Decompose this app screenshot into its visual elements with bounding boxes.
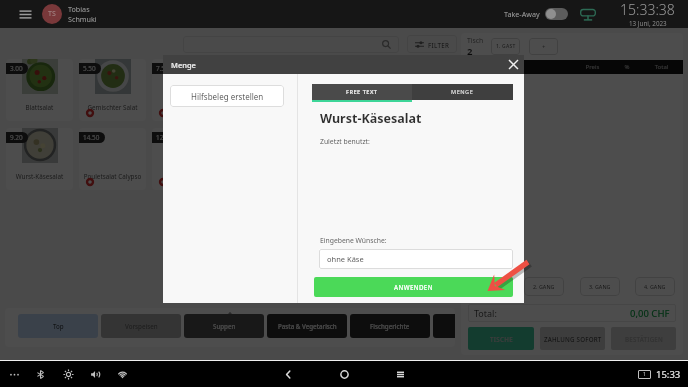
button[interactable]: ANWENDEN — [314, 277, 513, 297]
button[interactable]: 12.00 — [152, 128, 219, 190]
staticText: 2 — [467, 45, 473, 58]
button[interactable]: Brightness — [60, 366, 76, 382]
button[interactable]: Suppen — [184, 314, 264, 338]
button[interactable]: 9.20 — [6, 128, 73, 190]
staticText: 5.50 — [83, 64, 96, 73]
button[interactable]: 2. GANG — [524, 277, 564, 296]
staticText: Thonsalat — [152, 172, 219, 181]
button[interactable] — [433, 314, 455, 338]
button[interactable]: Wi-Fi — [114, 366, 130, 382]
staticText: Top — [53, 322, 64, 330]
staticText: 3.00 — [10, 64, 23, 73]
staticText: Hilfsbeleg erstellen — [191, 91, 264, 102]
button[interactable]: Close — [502, 55, 524, 74]
button[interactable]: Home — [336, 366, 352, 382]
staticText: Total: — [474, 307, 497, 319]
staticText: 13 Juni, 2023 — [629, 19, 667, 28]
staticText: Pouletsalat Calypso — [79, 172, 146, 181]
staticText: Pasta & Vegetarisch — [278, 322, 337, 330]
staticText: ohne Käse — [327, 254, 364, 264]
staticText: 2. GANG — [533, 283, 555, 290]
button[interactable]: Top — [18, 314, 98, 338]
staticText: Schmuki — [68, 14, 97, 24]
staticText: 4. GANG — [644, 283, 666, 290]
staticText: MENGE — [451, 88, 474, 96]
staticText: 15:33 — [656, 368, 681, 381]
staticText: 7.50 — [156, 64, 169, 73]
button[interactable]: Pasta & Vegetarisch — [267, 314, 347, 338]
staticText: FREE TEXT — [346, 88, 378, 96]
staticText: Take-Away — [504, 9, 540, 19]
staticText: BESTÄTIGEN — [625, 335, 663, 343]
button[interactable]: Fischgerichte — [350, 314, 430, 338]
button[interactable]: Vorspeisen — [101, 314, 181, 338]
button[interactable]: Bluetooth — [32, 366, 48, 382]
button[interactable]: ZAHLUNG SOFORT — [540, 327, 605, 350]
button[interactable]: Add guest — [529, 38, 558, 55]
button[interactable]: Display — [578, 4, 598, 24]
button[interactable]: 3. GANG — [580, 277, 620, 296]
staticText: Zuletzt benutzt: — [320, 137, 370, 146]
staticText: 1 — [643, 371, 646, 378]
button[interactable]: MENGE — [412, 84, 513, 100]
staticText: Gemischter Salat — [79, 103, 146, 112]
button[interactable]: Menu — [16, 5, 34, 23]
button[interactable]: 5.50 — [79, 59, 146, 121]
staticText: Menge — [171, 60, 196, 70]
button[interactable]: Volume — [87, 366, 103, 382]
button[interactable]: Back — [280, 366, 296, 382]
staticText: Tobias — [68, 4, 90, 14]
staticText: Fischgerichte — [370, 322, 410, 330]
staticText: 0,00 CHF — [630, 307, 670, 320]
staticText: Suppen — [213, 322, 236, 330]
staticText: 14.50 — [83, 133, 100, 142]
button[interactable]: TISCHE — [468, 327, 534, 350]
button[interactable]: Take-Away toggle — [545, 8, 568, 20]
button[interactable]: FREE TEXT — [312, 84, 412, 100]
staticText: TS — [48, 9, 56, 19]
button[interactable]: 1. GANG — [469, 277, 509, 296]
staticText: 12.00 — [156, 133, 173, 142]
staticText: Tisch — [467, 36, 484, 45]
staticText: Preis — [571, 63, 614, 71]
staticText: ANWENDEN — [394, 283, 433, 291]
button[interactable]: 7.50 — [152, 59, 219, 121]
button[interactable]: Search — [183, 36, 399, 53]
staticText: 9.20 — [10, 133, 23, 142]
button[interactable]: FILTER — [407, 35, 457, 53]
staticText: 15:33:38 — [620, 0, 675, 19]
staticText: Vorspeisen — [125, 322, 158, 330]
button[interactable]: 3.00 — [6, 59, 73, 121]
button[interactable]: Tisch — [467, 36, 484, 58]
button[interactable]: 1. GAST — [491, 38, 520, 55]
staticText: 1. GAST — [496, 43, 516, 50]
button[interactable]: Hilfsbeleg erstellen — [170, 85, 284, 107]
staticText: Caesar Salat — [152, 103, 219, 112]
button[interactable]: 4. GANG — [635, 277, 675, 296]
staticText: FILTER — [428, 41, 450, 49]
staticText: + — [542, 43, 546, 51]
staticText: Blattsalat — [6, 103, 73, 112]
button[interactable]: Recents — [392, 366, 408, 382]
staticText: Total — [640, 63, 683, 71]
staticText: ZAHLUNG SOFORT — [544, 335, 602, 343]
staticText: Wurst-Käsesalat — [6, 172, 73, 181]
staticText: % — [614, 63, 640, 71]
staticText: Wurst-Käsesalat — [320, 110, 422, 127]
staticText: 1. GANG — [478, 283, 500, 290]
staticText: Eingebene Wünsche: — [320, 236, 387, 245]
button[interactable]: More — [6, 366, 22, 382]
button[interactable]: 14.50 — [79, 128, 146, 190]
staticText: 3. GANG — [589, 283, 611, 290]
staticText: TISCHE — [490, 335, 513, 343]
